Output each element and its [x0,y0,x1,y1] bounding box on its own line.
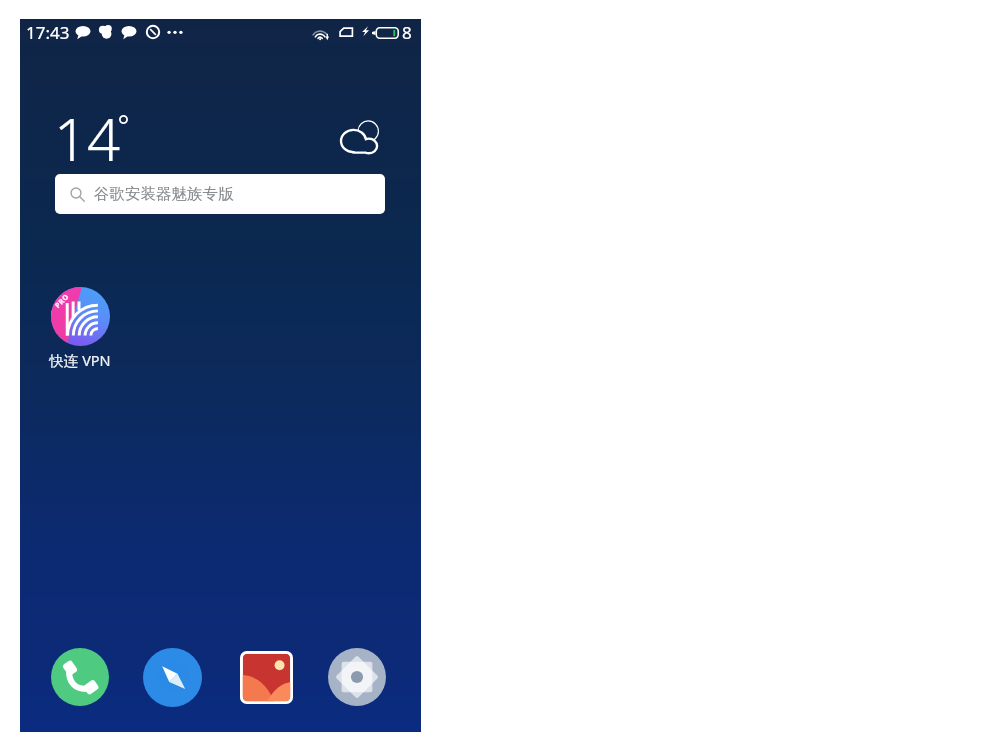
staticText: 14 [54,99,121,178]
staticText: 8 [402,21,412,44]
staticText: 17:43 [26,21,70,44]
staticText: PRO [53,291,72,311]
button[interactable]: Gallery [240,651,293,704]
button[interactable]: PRO [40,287,120,370]
staticText: 快连 VPN [49,350,111,370]
staticText: 谷歌安装器魅族专版 [94,184,234,204]
button[interactable]: Search [55,174,385,214]
button[interactable]: Browser [143,648,202,707]
button[interactable]: Settings [328,648,386,706]
button[interactable]: Phone [51,648,109,706]
